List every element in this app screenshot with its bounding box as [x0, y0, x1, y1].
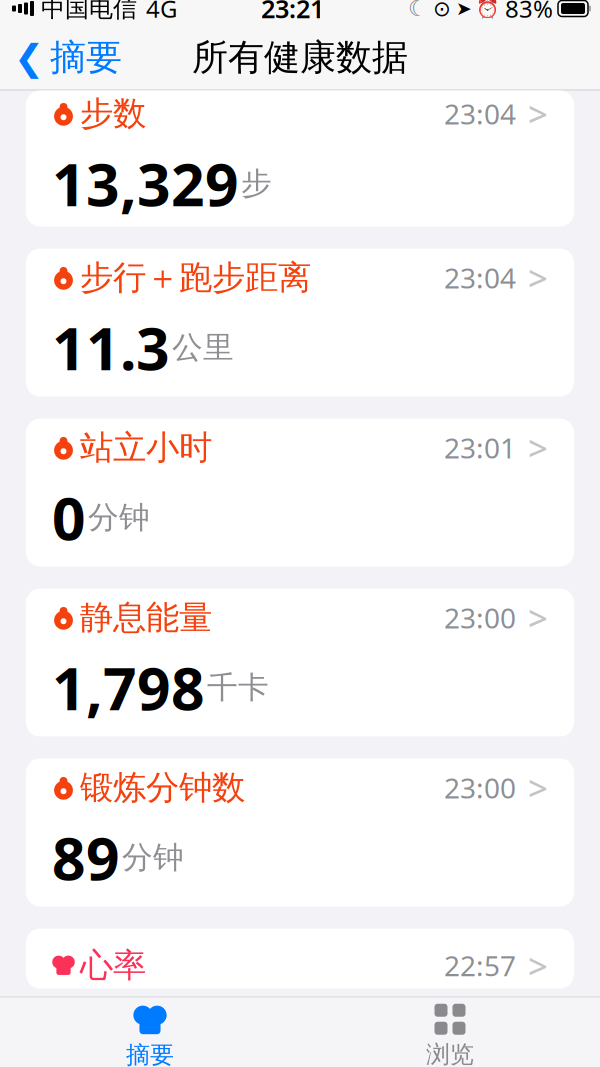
staticText: 站立小时 [80, 427, 212, 468]
staticText: ☾ [408, 0, 428, 21]
staticText: 摘要 [126, 1040, 174, 1067]
staticText: 23:04 [444, 259, 516, 296]
button[interactable]: 锻炼分钟数 [26, 758, 574, 906]
staticText: 89 [52, 819, 120, 896]
staticText: 步行＋跑步距离 [80, 257, 311, 298]
staticText: 23:00 [444, 599, 516, 636]
button[interactable]: 摘要 [0, 1000, 300, 1067]
button[interactable]: 步数 [26, 90, 574, 226]
button[interactable]: 静息能量 [26, 588, 574, 736]
staticText: 23:00 [444, 769, 516, 806]
staticText: 千卡 [207, 669, 269, 706]
staticText: ⊙ [433, 0, 451, 21]
staticText: 步数 [80, 93, 146, 134]
staticText: 分钟 [122, 839, 184, 876]
button[interactable]: 心率 [26, 928, 574, 988]
staticText: 22:57 [444, 947, 516, 984]
staticText: 锻炼分钟数 [80, 767, 245, 808]
button[interactable]: 浏览 [300, 1000, 600, 1067]
staticText: > [528, 594, 548, 640]
staticText: 23:21 [261, 0, 324, 25]
staticText: 11.3 [52, 309, 170, 386]
staticText: ❮ [14, 37, 44, 78]
staticText: ➤ [456, 0, 472, 19]
staticText: 13,329 [52, 145, 239, 222]
staticText: 4G [146, 0, 177, 24]
button[interactable]: 站立小时 [26, 418, 574, 566]
staticText: 0 [52, 479, 86, 556]
staticText: ⏰ [476, 0, 499, 19]
staticText: 1,798 [52, 649, 205, 726]
staticText: > [528, 942, 548, 988]
staticText: 浏览 [426, 1040, 474, 1067]
staticText: 23:01 [444, 429, 516, 466]
staticText: > [528, 424, 548, 470]
staticText: 静息能量 [80, 597, 212, 638]
staticText: > [528, 764, 548, 810]
button[interactable]: 步行＋跑步距离 [26, 248, 574, 396]
staticText: 摘要 [50, 35, 122, 80]
button[interactable]: ❮ [0, 29, 122, 86]
staticText: > [528, 254, 548, 300]
staticText: 所有健康数据 [192, 35, 408, 80]
staticText: 83% [505, 0, 553, 24]
staticText: 步 [241, 165, 272, 202]
staticText: 公里 [172, 329, 234, 366]
staticText: 心率 [80, 945, 146, 986]
staticText: > [528, 90, 548, 136]
staticText: 分钟 [88, 499, 150, 536]
staticText: 23:04 [444, 95, 516, 132]
staticText: 中国电信 [41, 0, 137, 23]
